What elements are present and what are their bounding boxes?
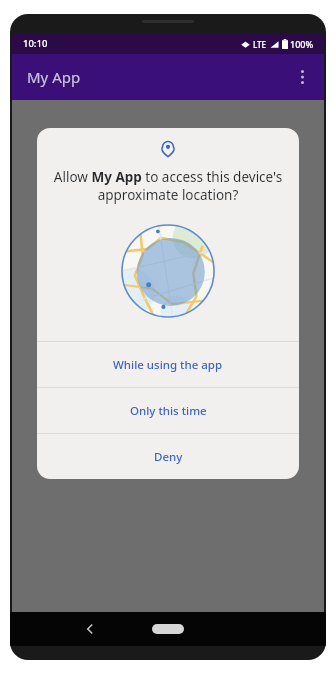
- button[interactable]: Home: [152, 624, 184, 634]
- staticText: Only this time: [130, 403, 207, 419]
- staticText: My App: [27, 67, 81, 87]
- staticText: While using the app: [113, 357, 223, 373]
- button[interactable]: Only this time: [37, 388, 299, 433]
- button[interactable]: While using the app: [37, 342, 299, 387]
- staticText: Allow My App to access this device's app…: [53, 168, 283, 204]
- button[interactable]: Deny: [37, 434, 299, 479]
- staticText: LTE: [253, 39, 267, 50]
- staticText: 10:10: [23, 37, 48, 50]
- button[interactable]: More options: [286, 61, 318, 93]
- button[interactable]: Back: [76, 615, 104, 643]
- staticText: Deny: [154, 449, 183, 465]
- staticText: 100%: [290, 38, 314, 50]
